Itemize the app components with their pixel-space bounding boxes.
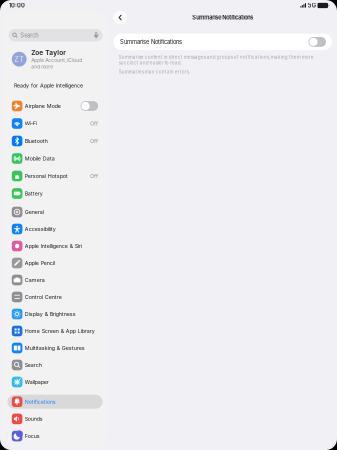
staticText: Bluetooth — [25, 138, 48, 144]
staticText: Search — [25, 362, 42, 368]
button[interactable]: Bluetooth — [3, 134, 108, 148]
staticText: Airplane Mode — [25, 103, 61, 109]
staticText: Zoe Taylor — [31, 49, 66, 57]
button[interactable]: Wallpaper — [3, 375, 108, 389]
staticText: Apple Account, iCloud — [31, 57, 82, 63]
staticText: Apple Pencil — [25, 260, 55, 266]
button[interactable]: Accessibility — [3, 222, 108, 236]
button[interactable]: Apple Pencil — [3, 256, 108, 270]
button[interactable]: Back — [113, 11, 127, 24]
button[interactable]: Sounds — [3, 412, 108, 426]
staticText: Home Screen & App Library — [25, 328, 95, 334]
button[interactable]: ZT — [3, 50, 108, 69]
staticText: Personal Hotspot — [25, 173, 68, 179]
staticText: Camera — [25, 277, 45, 283]
staticText: Control Centre — [25, 294, 62, 300]
staticText: 10:00 — [9, 2, 25, 9]
button[interactable]: General — [3, 205, 108, 219]
staticText: Off — [90, 138, 98, 144]
staticText: Search — [20, 32, 38, 39]
button[interactable]: Display & Brightness — [3, 307, 108, 321]
button[interactable]: Focus — [3, 429, 108, 443]
staticText: General — [25, 209, 44, 215]
button[interactable]: Search — [3, 358, 108, 372]
button[interactable]: Search — [8, 29, 102, 42]
button[interactable]: Battery — [3, 186, 108, 200]
button[interactable]: Summarise Notifications — [113, 34, 332, 50]
staticText: and more — [31, 64, 53, 70]
staticText: 5G — [308, 2, 316, 9]
button[interactable]: Mobile Data — [3, 151, 108, 165]
staticText: Display & Brightness — [25, 311, 76, 317]
staticText: Wallpaper — [25, 379, 49, 385]
button[interactable]: Personal Hotspot — [3, 169, 108, 183]
button[interactable]: Wi-Fi — [3, 116, 108, 130]
button[interactable]: Airplane Mode — [3, 99, 108, 113]
staticText: ZT — [14, 55, 24, 63]
staticText: Ready for Apple Intelligence — [14, 82, 83, 89]
staticText: Battery — [25, 190, 43, 197]
staticText: Wi-Fi — [25, 120, 37, 127]
staticText: Mobile Data — [25, 155, 55, 162]
button[interactable]: Ready for Apple Intelligence — [3, 79, 108, 93]
button[interactable]: Multitasking & Gestures — [3, 341, 108, 355]
staticText: Accessibility — [25, 226, 56, 232]
staticText: Focus — [25, 433, 40, 439]
staticText: Sounds — [25, 416, 43, 422]
button[interactable]: Notifications — [3, 395, 108, 409]
staticText: Apple Intelligence & Siri — [25, 243, 82, 249]
staticText: Summarise Notifications — [120, 38, 182, 45]
button[interactable]: Apple Intelligence & Siri — [3, 239, 108, 253]
button[interactable]: Camera — [3, 273, 108, 287]
staticText: Multitasking & Gestures — [25, 345, 85, 351]
staticText: Off — [90, 173, 98, 179]
staticText: Off — [90, 120, 98, 127]
staticText: Summarise content in direct messages and… — [119, 54, 314, 65]
staticText: Notifications — [25, 398, 56, 405]
button[interactable]: Home Screen & App Library — [3, 324, 108, 338]
staticText: Summarise Notifications — [192, 14, 253, 21]
staticText: Summaries may contain errors. — [119, 69, 190, 74]
button[interactable]: Control Centre — [3, 290, 108, 304]
